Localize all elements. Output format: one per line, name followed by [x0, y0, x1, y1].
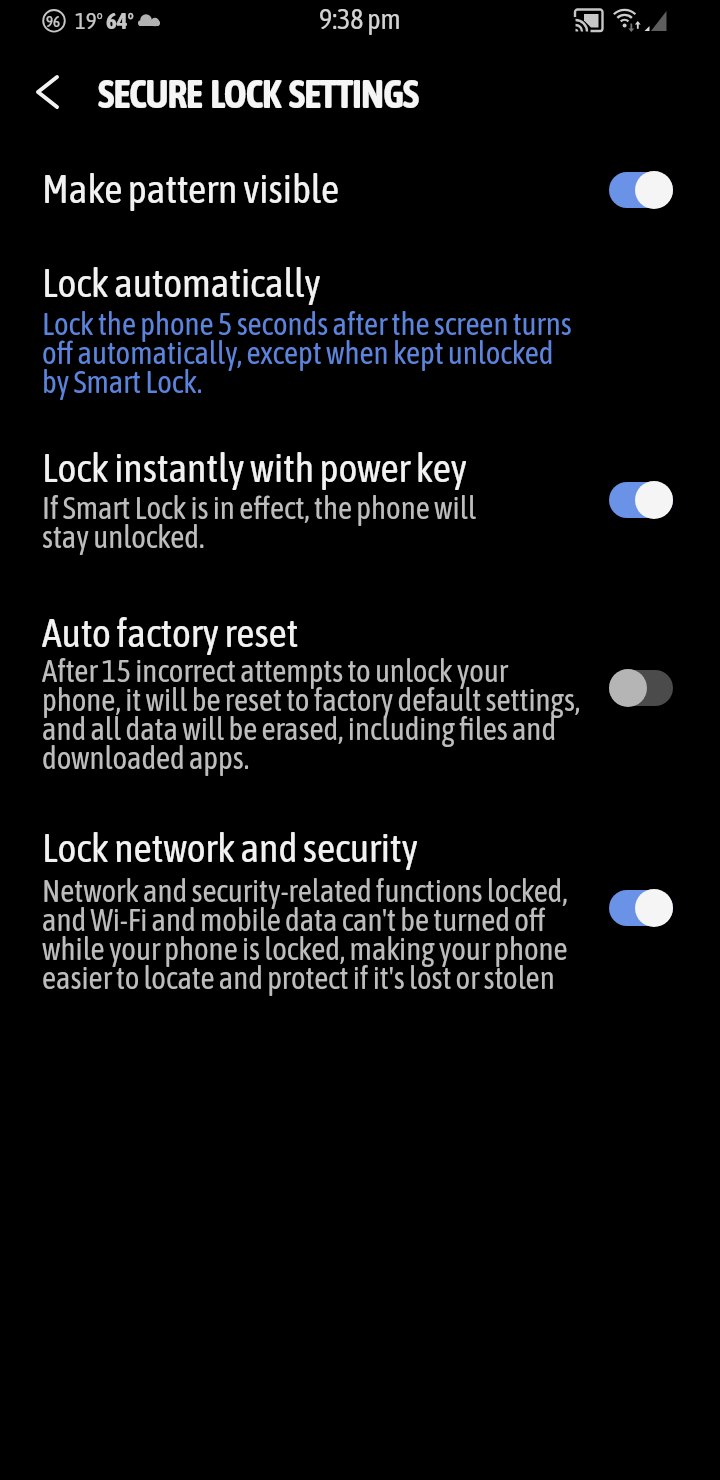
staticText: After 15 incorrect attempts to unlock yo…: [42, 653, 581, 775]
staticText: Make pattern visible: [42, 166, 340, 212]
staticText: Auto factory reset: [42, 610, 299, 656]
staticText: Network and security-related functions l…: [42, 873, 568, 995]
staticText: 96: [46, 13, 61, 30]
staticText: Lock the phone 5 seconds after the scree…: [42, 306, 572, 399]
staticText: Lock automatically: [42, 260, 321, 306]
staticText: 19°: [75, 8, 103, 34]
staticText: Lock instantly with power key: [42, 445, 467, 491]
staticText: 64°: [106, 8, 134, 34]
staticText: 9:38 pm: [319, 3, 401, 35]
staticText: SECURE LOCK SETTINGS: [98, 72, 419, 117]
staticText: If Smart Lock is in effect, the phone wi…: [42, 490, 477, 554]
staticText: Lock network and security: [42, 825, 419, 871]
